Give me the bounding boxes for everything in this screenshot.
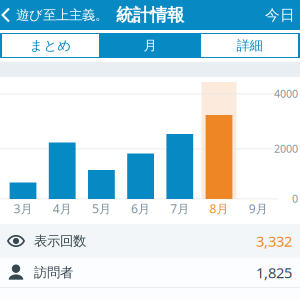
button[interactable]: 表示回数 <box>0 224 300 258</box>
button[interactable]: まとめ <box>2 34 99 57</box>
staticText: 5月 <box>92 200 111 216</box>
staticText: 0 <box>292 191 298 206</box>
staticText: 統計情報 <box>116 4 184 26</box>
button[interactable]: 訪問者 <box>0 258 300 287</box>
staticText: 訪問者 <box>34 264 73 281</box>
staticText: 3月 <box>13 200 32 216</box>
staticText: 4月 <box>53 200 72 216</box>
staticText: 8月 <box>209 200 228 216</box>
staticText: 1,825 <box>256 263 292 282</box>
staticText: 詳細 <box>236 37 262 54</box>
staticText: 9月 <box>249 200 268 216</box>
staticText: 6月 <box>131 200 150 216</box>
staticText: 2000 <box>274 141 298 156</box>
staticText: 4000 <box>274 86 298 101</box>
staticText: まとめ <box>29 37 71 54</box>
staticText: 遊び至上主義。 <box>16 7 108 23</box>
staticText: 7月 <box>170 200 189 216</box>
staticText: 月 <box>143 37 156 54</box>
staticText: 3,332 <box>256 231 292 251</box>
button[interactable]: 月 <box>100 33 200 58</box>
button[interactable]: 今日 <box>260 0 300 30</box>
staticText: 今日 <box>265 6 295 24</box>
staticText: 表示回数 <box>34 233 86 249</box>
button[interactable]: 詳細 <box>201 34 298 57</box>
button[interactable]: 遊び至上主義。 <box>0 0 114 30</box>
